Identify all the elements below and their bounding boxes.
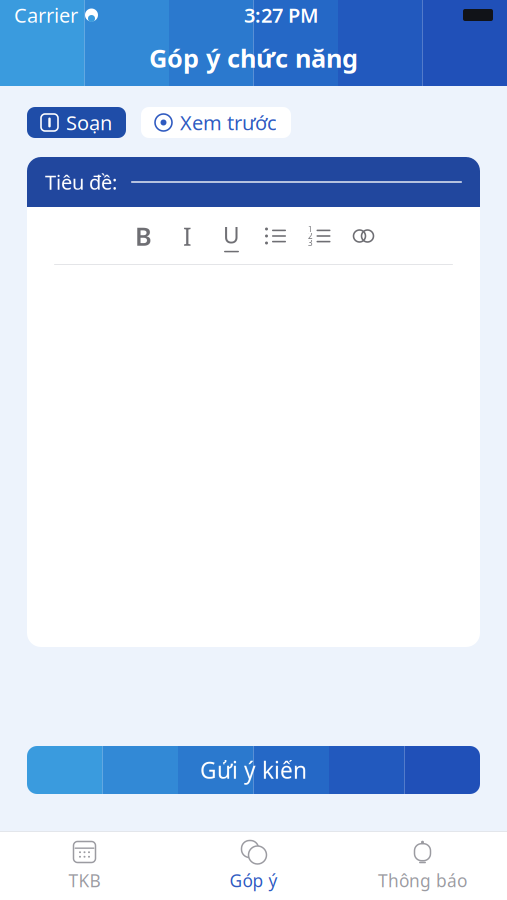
staticText: U (223, 220, 240, 250)
staticText: TKB (68, 869, 100, 892)
button[interactable]: Soạn (27, 107, 126, 138)
staticText: Soạn (66, 109, 112, 136)
button[interactable]: Thông báo (338, 832, 507, 900)
staticText: Góp ý (229, 869, 277, 892)
button[interactable]: B (121, 221, 165, 251)
button[interactable]: U (209, 221, 253, 251)
button[interactable]: Numbered list (297, 221, 341, 251)
button[interactable]: Gửi ý kiến (27, 746, 480, 794)
staticText: Tiêu đề: (45, 169, 117, 195)
staticText: B (135, 219, 152, 253)
button[interactable]: Insert link (341, 221, 385, 251)
button[interactable]: Bulleted list (253, 221, 297, 251)
button[interactable]: TKB (0, 832, 169, 900)
staticText: 3 (308, 238, 313, 248)
button[interactable]: I (165, 221, 209, 251)
button[interactable]: Góp ý (169, 832, 338, 900)
staticText: Góp ý chức năng (149, 41, 358, 75)
staticText: Thông báo (378, 869, 467, 892)
staticText: 1 (308, 224, 313, 234)
staticText: I (183, 219, 192, 253)
staticText: 2 (308, 231, 313, 241)
staticText: Xem trước (180, 109, 277, 136)
staticText: Gửi ý kiến (200, 755, 307, 785)
staticText: 3:27 PM (244, 2, 319, 28)
staticText: Carrier (14, 2, 78, 28)
button[interactable]: Xem trước (141, 107, 291, 138)
